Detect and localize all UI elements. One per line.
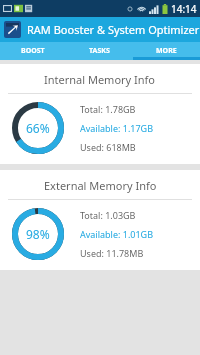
staticText: TASKS: [89, 46, 110, 56]
staticText: 14:14: [171, 2, 197, 16]
button[interactable]: BOOST: [0, 42, 66, 60]
button[interactable]: MORE: [133, 42, 200, 60]
staticText: Used: 618MB: [80, 141, 136, 153]
staticText: RAM Booster & System Optimizer: [27, 22, 200, 37]
staticText: BOOST: [21, 46, 45, 56]
staticText: Internal Memory Info: [44, 72, 156, 87]
staticText: Used: 11.78MB: [80, 247, 144, 259]
staticText: External Memory Info: [44, 178, 157, 193]
button[interactable]: Internal Memory Info: [0, 64, 200, 164]
staticText: Available: 1.17GB: [80, 122, 154, 134]
staticText: MORE: [156, 46, 177, 56]
staticText: Available: 1.01GB: [80, 228, 154, 240]
staticText: 66%: [26, 120, 50, 136]
button[interactable]: App icon: [4, 21, 21, 38]
staticText: Total: 1.78GB: [80, 103, 136, 115]
staticText: 98%: [26, 226, 50, 242]
button[interactable]: TASKS: [66, 42, 133, 60]
button[interactable]: External Memory Info: [0, 170, 200, 270]
staticText: Total: 1.03GB: [80, 209, 136, 221]
